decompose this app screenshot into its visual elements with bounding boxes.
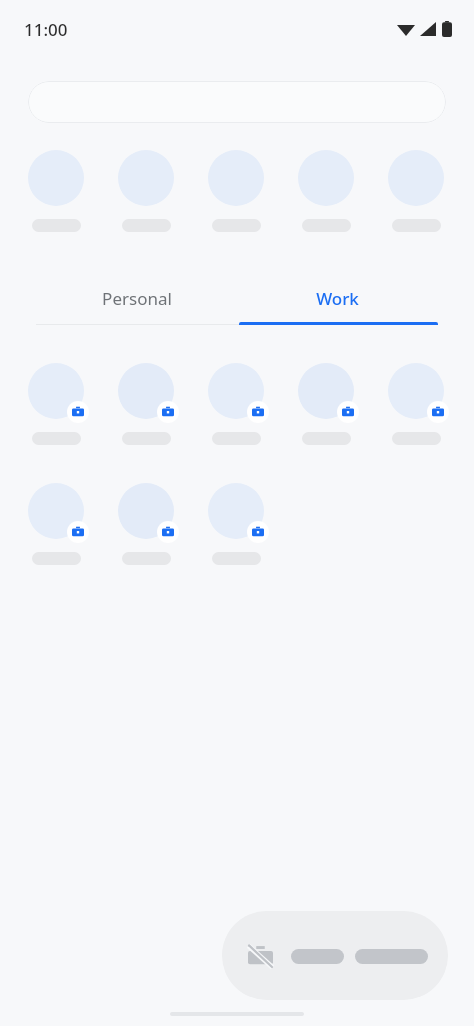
button[interactable]: Search	[28, 81, 446, 123]
button[interactable]: Turn off work apps	[222, 911, 448, 1000]
button[interactable]	[22, 483, 90, 565]
button[interactable]: Work	[237, 271, 438, 325]
button[interactable]	[202, 483, 270, 565]
button[interactable]: Personal	[36, 271, 237, 325]
button[interactable]	[202, 150, 270, 232]
button[interactable]	[112, 150, 180, 232]
button[interactable]	[382, 150, 450, 232]
staticText: 11:00	[24, 18, 68, 41]
button[interactable]	[22, 363, 90, 445]
button[interactable]	[112, 483, 180, 565]
staticText: Work	[316, 287, 359, 310]
button[interactable]	[382, 363, 450, 445]
button[interactable]	[112, 363, 180, 445]
button[interactable]	[292, 363, 360, 445]
button[interactable]	[202, 363, 270, 445]
button[interactable]	[22, 150, 90, 232]
button[interactable]	[292, 150, 360, 232]
staticText: Personal	[102, 287, 172, 310]
